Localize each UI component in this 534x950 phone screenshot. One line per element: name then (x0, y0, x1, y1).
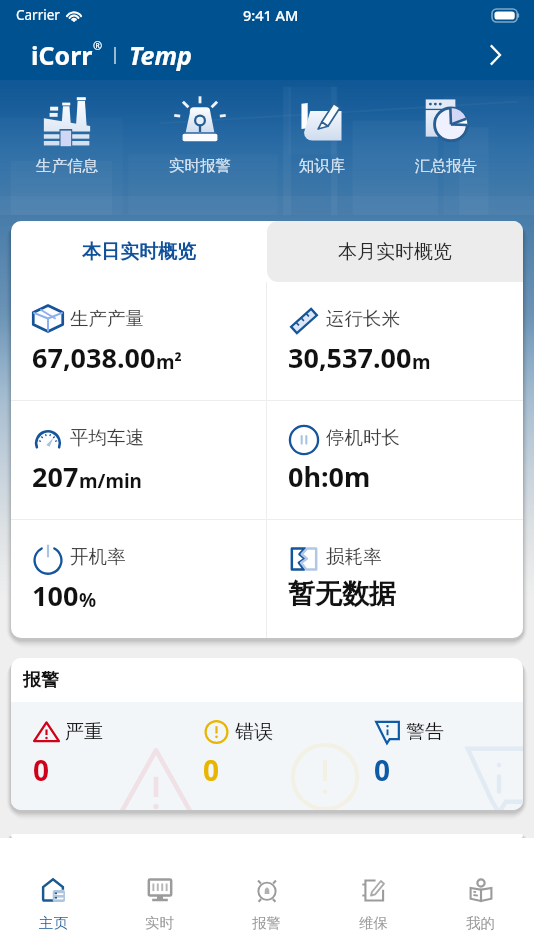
staticText: 生产产量 (70, 307, 144, 330)
staticText: 207 (32, 458, 79, 495)
button[interactable]: 开机率 (11, 520, 266, 638)
staticText: 停机时长 (326, 426, 400, 449)
staticText: 报警 (252, 914, 281, 932)
staticText: 平均车速 (70, 426, 144, 449)
staticText: m² (156, 349, 182, 375)
staticText: 实时报警 (169, 156, 231, 176)
staticText: 汇总报告 (415, 156, 477, 176)
staticText: 100 (32, 577, 79, 614)
button[interactable]: 本月实时概览 (267, 221, 523, 282)
staticText: m (412, 349, 431, 375)
staticText: Temp (129, 38, 192, 72)
staticText: 维保 (359, 914, 388, 932)
button[interactable]: 生产信息 (15, 95, 119, 176)
button[interactable]: 生产产量 (11, 282, 266, 400)
staticText: 知识库 (299, 156, 346, 176)
button[interactable]: 本日实时概览 (11, 221, 267, 282)
staticText: 9:41 AM (243, 5, 299, 25)
button[interactable]: 实时报警 (148, 95, 252, 176)
button[interactable]: 知识库 (270, 95, 374, 176)
button[interactable]: 我的 (427, 838, 534, 950)
staticText: 0 (33, 751, 50, 789)
staticText: m/min (79, 468, 142, 494)
staticText: 30,537.00 (288, 339, 412, 376)
staticText: 0 (374, 751, 391, 789)
staticText: 报警 (23, 669, 59, 692)
button[interactable]: 汇总报告 (394, 95, 498, 176)
staticText: 运行长米 (326, 307, 400, 330)
button[interactable]: 实时 (106, 838, 213, 950)
staticText: 本月实时概览 (338, 240, 452, 264)
staticText: 开机率 (70, 545, 126, 568)
staticText: ® (93, 38, 103, 53)
staticText: 主页 (39, 914, 68, 932)
staticText: 67,038.00 (32, 339, 156, 376)
staticText: % (79, 587, 97, 613)
button[interactable]: 警告 (352, 702, 523, 810)
staticText: 损耗率 (326, 545, 382, 568)
staticText: 警告 (406, 720, 444, 744)
staticText: 错误 (235, 720, 273, 744)
button[interactable]: 运行长米 (267, 282, 523, 400)
staticText: 实时 (145, 914, 174, 932)
button[interactable]: 严重 (11, 702, 181, 810)
staticText: 本日实时概览 (82, 240, 196, 264)
staticText: 0h:0m (288, 458, 371, 495)
button[interactable]: More (478, 38, 512, 72)
button[interactable]: 停机时长 (267, 401, 523, 519)
button[interactable]: 报警 (213, 838, 320, 950)
staticText: 0 (203, 751, 220, 789)
staticText: 生产信息 (36, 156, 98, 176)
staticText: Carrier (16, 6, 60, 24)
button[interactable]: 错误 (181, 702, 352, 810)
button[interactable]: 主页 (0, 838, 106, 950)
staticText: 严重 (65, 720, 103, 744)
button[interactable]: 损耗率 (267, 520, 523, 638)
staticText: 我的 (466, 914, 495, 932)
button[interactable]: 维保 (320, 838, 427, 950)
staticText: 暂无数据 (288, 577, 396, 611)
button[interactable]: 平均车速 (11, 401, 266, 519)
staticText: iCorr (31, 38, 93, 72)
